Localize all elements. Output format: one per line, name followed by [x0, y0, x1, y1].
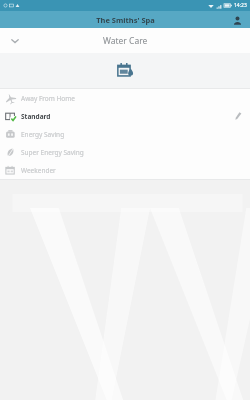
- button[interactable]: Super Energy Saving: [0, 143, 250, 161]
- staticText: The Smiths' Spa: [96, 15, 155, 25]
- button[interactable]: Weekender: [0, 161, 250, 179]
- staticText: 14:23: [234, 2, 247, 9]
- button[interactable]: Collapse: [0, 28, 250, 53]
- staticText: Super Energy Saving: [21, 148, 84, 157]
- button[interactable]: Energy Saving: [0, 125, 250, 143]
- staticText: Weekender: [21, 166, 56, 175]
- button[interactable]: Account: [230, 13, 244, 27]
- button[interactable]: Standard: [0, 107, 250, 125]
- staticText: Standard: [21, 112, 51, 121]
- staticText: Energy Saving: [21, 130, 65, 139]
- button[interactable]: Away From Home: [0, 89, 250, 107]
- staticText: Water Care: [103, 35, 148, 47]
- button[interactable]: Collapse: [4, 30, 26, 52]
- staticText: Away From Home: [21, 94, 76, 103]
- button[interactable]: Edit schedule: [230, 108, 246, 124]
